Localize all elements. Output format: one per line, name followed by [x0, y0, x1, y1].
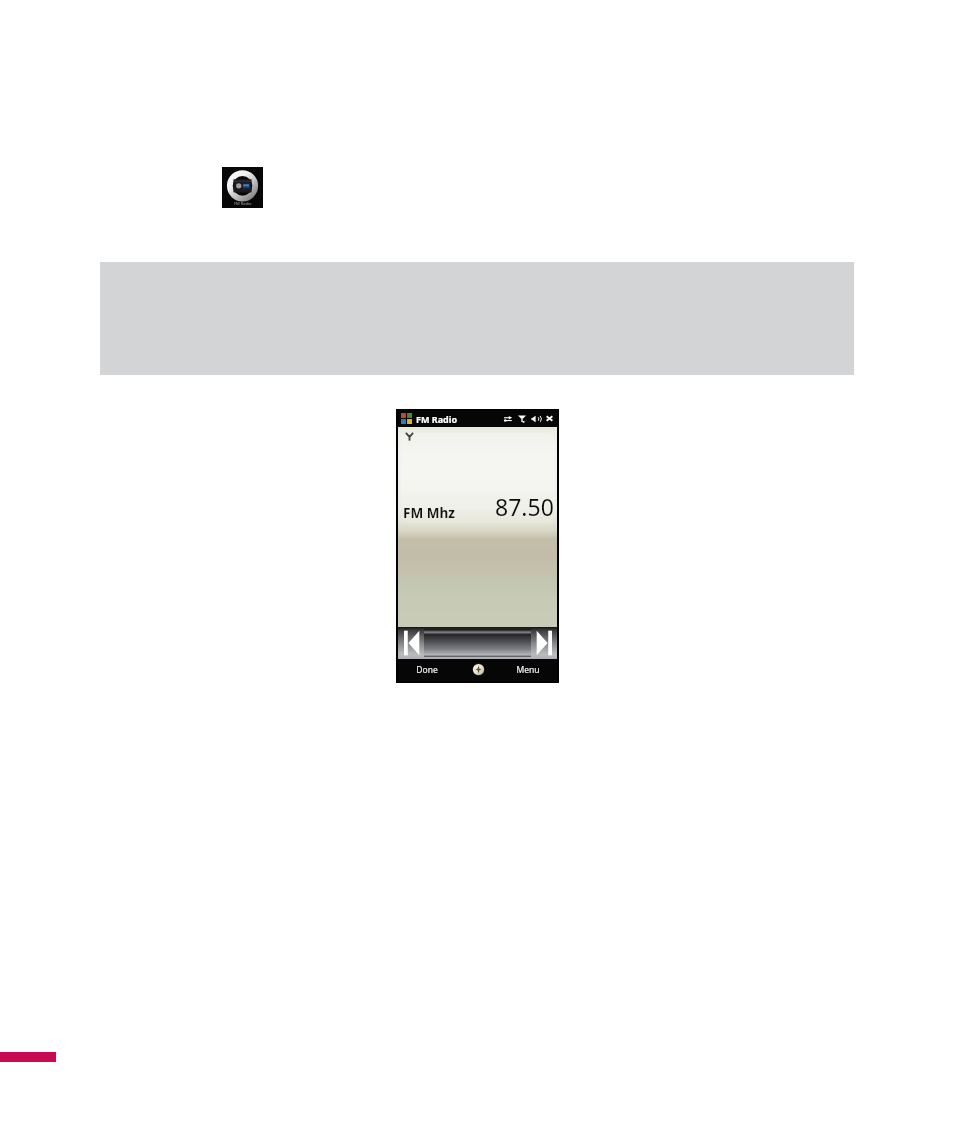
staticText: Menu: [516, 664, 540, 676]
staticText: FM Mhz: [403, 504, 455, 522]
button[interactable]: Connectivity: [503, 414, 513, 424]
button[interactable]: [424, 629, 531, 657]
button[interactable]: Done: [398, 659, 456, 681]
button[interactable]: Close: [545, 414, 554, 423]
staticText: 87.50: [495, 491, 554, 522]
button[interactable]: Start: [398, 410, 416, 427]
button[interactable]: Next station: [531, 627, 557, 659]
button[interactable]: Start menu: [472, 663, 485, 676]
button[interactable]: Previous station: [398, 627, 424, 659]
staticText: FM Radio: [234, 201, 252, 206]
button[interactable]: Menu: [499, 659, 557, 681]
staticText: Done: [416, 664, 438, 676]
button[interactable]: Signal strength: [517, 414, 527, 424]
button[interactable]: FM Radio: [222, 167, 263, 208]
staticText: FM Radio: [416, 413, 458, 425]
button[interactable]: Volume: [531, 414, 541, 424]
